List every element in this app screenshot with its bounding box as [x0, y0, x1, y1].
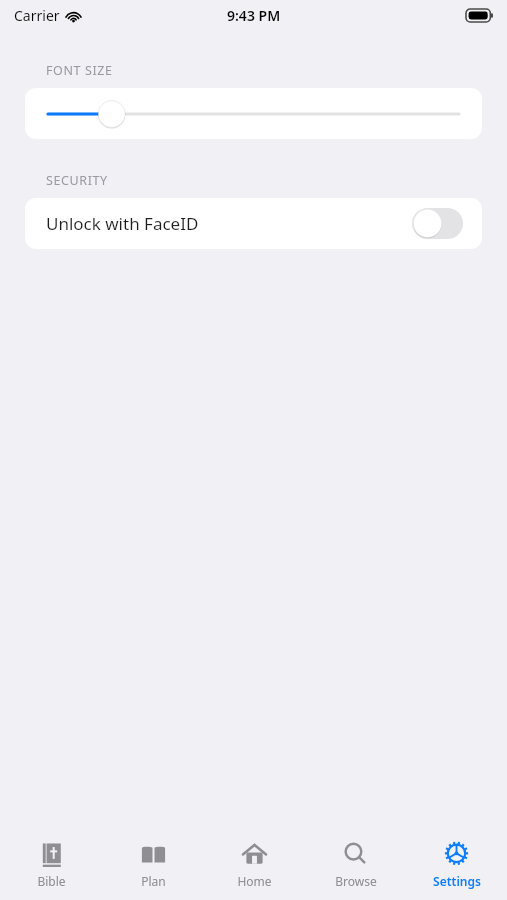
button[interactable]: Plan [102, 832, 204, 900]
staticText: Bible [37, 873, 66, 889]
staticText: Browse [335, 873, 377, 889]
staticText: Carrier [14, 6, 60, 25]
staticText: Settings [433, 873, 481, 889]
staticText: FONT SIZE [46, 62, 113, 79]
button[interactable]: Bible [0, 832, 102, 900]
button[interactable]: Home [204, 832, 305, 900]
button[interactable]: Browse [305, 832, 406, 900]
other: Font size slider [48, 99, 459, 129]
staticText: SECURITY [46, 172, 108, 189]
staticText: Plan [141, 873, 166, 889]
staticText: Unlock with FaceID [46, 212, 199, 235]
staticText: Home [237, 873, 272, 889]
button[interactable]: Font size slider [25, 88, 482, 139]
button[interactable]: Unlock with FaceID [25, 198, 482, 249]
button[interactable]: Unlock with FaceID toggle [412, 208, 463, 239]
staticText: 9:43 PM [227, 6, 281, 25]
button[interactable]: Settings [406, 832, 507, 900]
